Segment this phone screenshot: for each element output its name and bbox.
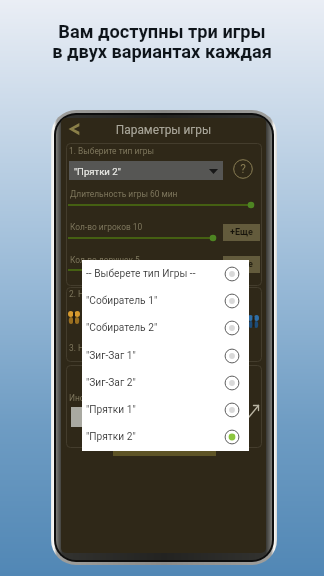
staticText: Инструкция	[69, 393, 116, 403]
staticText: "Зиг-Заг 2"	[86, 377, 136, 389]
staticText: "Собиратель 2"	[86, 322, 158, 334]
button[interactable]: "Собиратель 2"	[82, 314, 249, 341]
staticText: Длительность игры 60 мин	[70, 189, 178, 199]
staticText: "Прятки 2"	[74, 166, 121, 177]
button[interactable]: "Зиг-Заг 1"	[82, 342, 249, 369]
button[interactable]: Развернуть	[248, 404, 260, 418]
button[interactable]: +Еще	[223, 224, 260, 241]
staticText: Коп	[86, 412, 102, 423]
button[interactable]: Коп	[71, 407, 117, 427]
staticText: "Собиратель 1"	[86, 295, 158, 307]
button[interactable]: +Еще	[223, 256, 260, 273]
staticText: -- Выберете тип Игры --	[86, 268, 196, 280]
staticText: "Зиг-Заг 1"	[86, 350, 136, 362]
staticText: "Прятки 1"	[86, 404, 136, 416]
staticText: 3. Начните игру	[69, 343, 131, 353]
button[interactable]: Справка	[233, 159, 253, 179]
staticText: Кол-во ловушек 5	[70, 255, 140, 265]
staticText: +Еще	[230, 259, 253, 270]
staticText: 1. Выберите тип игры	[69, 146, 155, 156]
staticText: ?	[233, 162, 253, 176]
button[interactable]: "Прятки 2"	[69, 161, 223, 180]
button[interactable]: Назад	[67, 122, 80, 136]
button[interactable]: Параметры игры	[61, 118, 266, 142]
button[interactable]: "Прятки 2"	[82, 423, 249, 450]
staticText: +Еще	[230, 227, 253, 238]
button[interactable]: "Прятки 1"	[82, 396, 249, 423]
button[interactable]: -- Выберете тип Игры --	[82, 260, 249, 287]
staticText: Кол-во игроков 10	[70, 222, 143, 232]
button[interactable]: "Собиратель 1"	[82, 287, 249, 314]
staticText: Параметры игры	[61, 123, 266, 137]
button[interactable]	[113, 434, 216, 456]
staticText: 2. Нажмите на игрока	[69, 289, 155, 299]
staticText: в двух вариантах каждая	[0, 41, 324, 62]
staticText: "Прятки 2"	[86, 431, 136, 443]
button[interactable]: "Зиг-Заг 2"	[82, 369, 249, 396]
staticText: Вам доступны три игры	[0, 21, 324, 42]
